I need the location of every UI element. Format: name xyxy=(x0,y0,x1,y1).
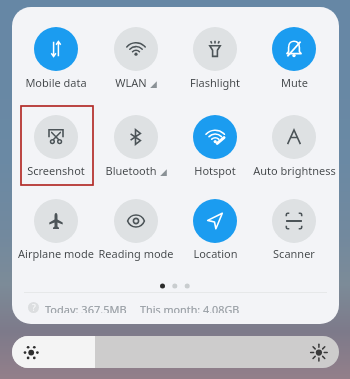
button[interactable] xyxy=(255,195,333,269)
staticText: Flashlight xyxy=(190,75,240,90)
staticText: Hotspot xyxy=(194,163,236,178)
staticText: This month: 4.08GB xyxy=(140,302,240,313)
button[interactable] xyxy=(176,111,254,185)
staticText: Location xyxy=(193,246,238,261)
staticText: Airplane mode xyxy=(18,246,94,261)
button[interactable] xyxy=(17,111,95,185)
staticText: Mobile data xyxy=(25,75,87,90)
button[interactable] xyxy=(17,23,95,97)
button[interactable]: Brightness xyxy=(12,336,339,368)
staticText: ? xyxy=(32,302,36,313)
button[interactable] xyxy=(97,111,175,185)
staticText: Scanner xyxy=(273,246,315,261)
staticText: Today: 367.5MB xyxy=(45,302,127,313)
staticText: WLAN xyxy=(115,75,147,90)
staticText: Auto brightness xyxy=(253,163,336,178)
button[interactable] xyxy=(255,111,333,185)
staticText: Screenshot xyxy=(27,163,85,178)
staticText: Bluetooth xyxy=(105,163,157,178)
button[interactable] xyxy=(176,195,254,269)
button[interactable] xyxy=(176,23,254,97)
button[interactable] xyxy=(17,195,95,269)
button[interactable] xyxy=(97,23,175,97)
staticText: Mute xyxy=(281,75,308,90)
staticText: Reading mode xyxy=(98,246,174,261)
button[interactable] xyxy=(255,23,333,97)
button[interactable] xyxy=(97,195,175,269)
